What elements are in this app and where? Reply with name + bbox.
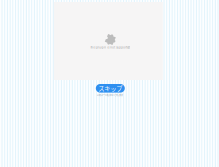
staticText: This plugin is not supported (90, 46, 130, 49)
staticText: スキップ (98, 84, 122, 93)
button[interactable]: スキップ (96, 84, 125, 93)
staticText: このページをスキップします (97, 93, 123, 97)
